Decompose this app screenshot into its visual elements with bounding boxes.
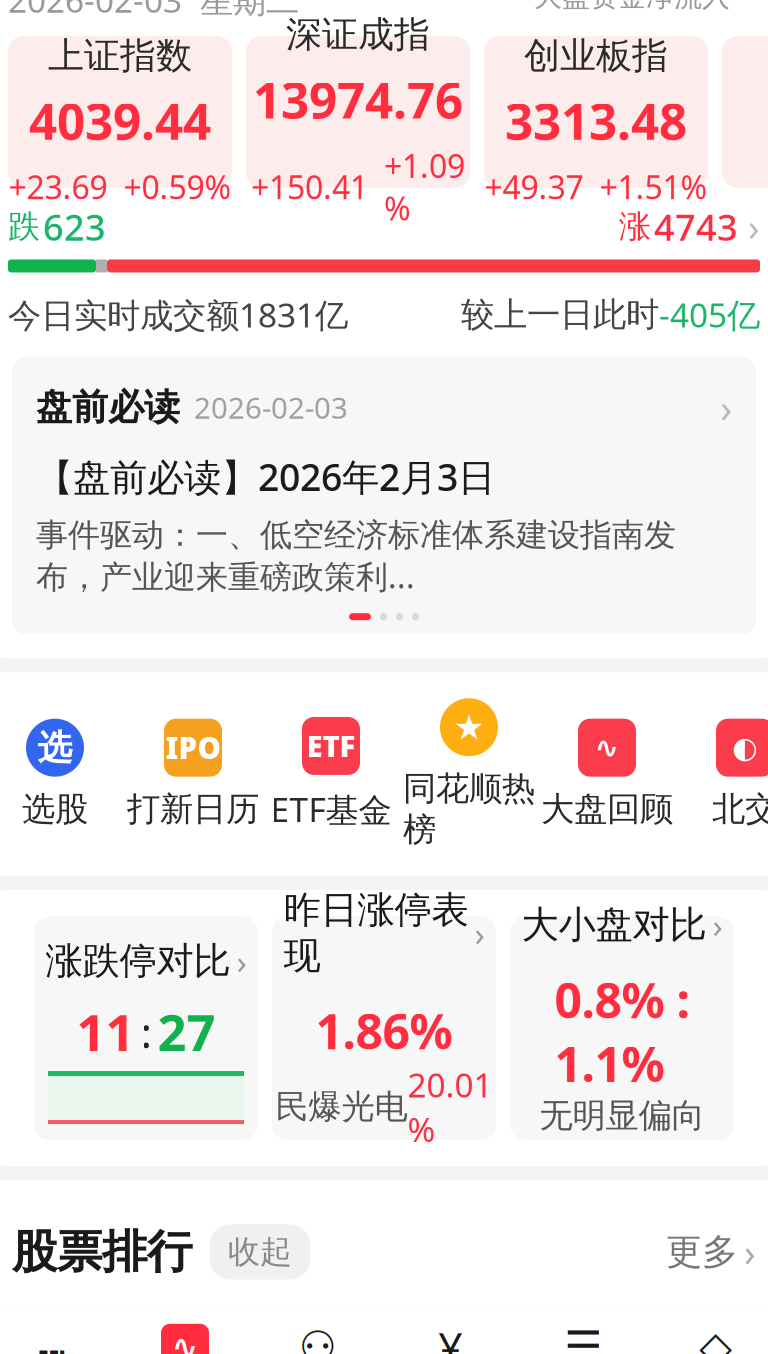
button[interactable]: 盘前必读: [12, 357, 756, 634]
button[interactable]: 大小盘对比: [510, 916, 734, 1140]
staticText: 今日实时成交额1831亿: [8, 292, 348, 337]
staticText: 大盘资金净流入: [534, 0, 730, 14]
staticText: ◇: [699, 1323, 732, 1354]
staticText: :: [140, 1003, 151, 1060]
staticText: 跌: [8, 207, 40, 246]
button[interactable]: 更多: [666, 1227, 756, 1277]
staticText: 涨跌停对比: [45, 938, 230, 984]
staticText: 大小盘对比: [521, 902, 706, 948]
staticText: 事件驱动：一、低空经济标准体系建设指南发布，产业迎来重磅政策利...: [36, 515, 676, 597]
staticText: ›: [748, 202, 760, 251]
staticText: 623: [43, 203, 106, 251]
staticText: 27: [157, 998, 215, 1065]
staticText: 更多: [666, 1230, 738, 1274]
button[interactable]: 昨日涨停表现: [272, 916, 496, 1140]
staticText: 11: [76, 998, 134, 1065]
button[interactable]: 选: [0, 719, 124, 830]
staticText: ETF基金: [270, 787, 391, 831]
button[interactable]: IPO: [124, 719, 262, 830]
staticText: ›: [744, 1227, 756, 1277]
staticText: +49.37: [484, 165, 583, 208]
staticText: 北交: [712, 789, 768, 830]
button[interactable]: 收起: [210, 1224, 310, 1280]
staticText: +23.69: [8, 165, 107, 208]
staticText: 20.01%: [407, 1063, 492, 1151]
staticText: ETF: [306, 726, 355, 765]
staticText: 2026-02-03 星期二: [8, 0, 299, 22]
staticText: ⑉: [39, 1326, 65, 1354]
staticText: 2026-02-03: [194, 388, 348, 427]
staticText: ›: [236, 939, 246, 983]
staticText: +150.41: [251, 165, 368, 208]
staticText: 大盘回顾: [541, 789, 673, 830]
button[interactable]: ∿: [119, 1324, 251, 1354]
button[interactable]: ◇: [649, 1324, 768, 1354]
staticText: ⚇: [299, 1323, 337, 1354]
staticText: ★: [453, 707, 484, 747]
staticText: 无明显偏向: [539, 1095, 704, 1136]
staticText: 涨: [619, 207, 651, 246]
button[interactable]: ⑉: [0, 1324, 119, 1354]
staticText: 较上一日此时: [461, 294, 659, 335]
button[interactable]: ☰: [517, 1324, 649, 1354]
staticText: 昨日涨停表现: [283, 887, 468, 979]
button[interactable]: ⚇: [251, 1324, 384, 1354]
staticText: 选股: [22, 789, 88, 830]
button[interactable]: 跌: [0, 188, 768, 337]
button[interactable]: 涨跌停对比: [34, 916, 258, 1140]
staticText: ∿: [171, 1329, 198, 1354]
staticText: +1.09%: [384, 144, 465, 229]
button[interactable]: ◐: [676, 719, 768, 830]
staticText: 上证指数: [48, 34, 192, 78]
staticText: ¥: [438, 1318, 462, 1354]
staticText: 【盘前必读】2026年2月3日: [36, 452, 495, 501]
button[interactable]: ¥: [384, 1324, 517, 1354]
button[interactable]: ▮: [0, 0, 768, 36]
button[interactable]: 创业板指: [484, 36, 708, 188]
staticText: 同花顺热榜: [403, 768, 535, 850]
staticText: 4039.44: [29, 88, 211, 153]
staticText: 选: [37, 726, 72, 769]
staticText: 民爆光电: [275, 1086, 407, 1127]
staticText: ◐: [732, 731, 758, 764]
staticText: ›: [712, 903, 722, 947]
staticText: 深证成指: [286, 12, 430, 57]
staticText: 股票排行: [12, 1224, 192, 1280]
staticText: +0.59%: [123, 165, 231, 208]
staticText: 3313.48: [505, 88, 687, 153]
button[interactable]: 深证成指: [246, 36, 470, 188]
staticText: 1.86%: [315, 999, 452, 1062]
staticText: ∿: [594, 731, 619, 764]
staticText: 盘前必读: [36, 385, 180, 429]
staticText: ›: [474, 911, 484, 955]
button[interactable]: ∿: [538, 719, 676, 830]
button[interactable]: ★: [400, 698, 538, 850]
staticText: -405亿: [659, 292, 760, 337]
button[interactable]: 上证指数: [8, 36, 232, 188]
staticText: 创业板指: [524, 34, 668, 78]
staticText: ›: [720, 381, 732, 434]
button[interactable]: ETF: [262, 717, 400, 831]
staticText: ☰: [564, 1323, 602, 1354]
staticText: 收起: [228, 1232, 292, 1272]
staticText: 0.8% : 1.1%: [554, 968, 689, 1095]
staticText: 4743: [654, 203, 738, 251]
staticText: +1.51%: [599, 165, 707, 208]
staticText: 打新日历: [127, 789, 259, 830]
staticText: IPO: [165, 728, 220, 767]
staticText: 13974.76: [253, 67, 463, 132]
